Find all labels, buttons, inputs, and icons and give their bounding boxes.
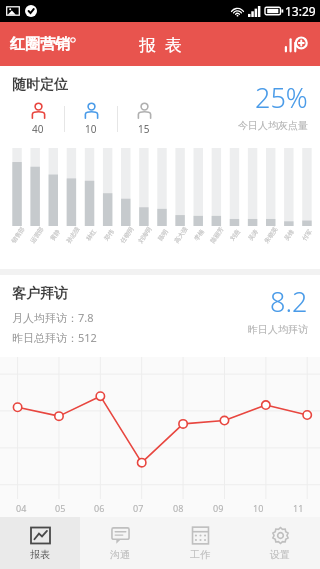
button[interactable]: 客户拜访: [0, 275, 320, 517]
staticText: 销售部: [10, 225, 26, 245]
staticText: 13:29: [285, 3, 316, 19]
staticText: 今日人均灰点量: [238, 119, 308, 132]
staticText: 25%: [255, 79, 308, 116]
staticText: 报表: [30, 548, 50, 561]
staticText: 运营部: [29, 225, 45, 245]
button[interactable]: 沟通: [80, 517, 160, 569]
button[interactable]: 报表: [0, 517, 80, 569]
staticText: 月人均拜访：7.8: [12, 310, 94, 325]
staticText: 昨日总拜访：512: [12, 330, 97, 345]
staticText: 报 表: [139, 33, 182, 56]
button[interactable]: 红圈营销: [10, 35, 76, 54]
staticText: 刘海明: [137, 225, 153, 245]
staticText: 随时定位: [12, 76, 68, 94]
staticText: 11: [293, 502, 304, 514]
staticText: 林红: [84, 228, 98, 242]
staticText: 黄静: [48, 228, 62, 242]
button[interactable]: Report settings: [282, 31, 308, 57]
staticText: 10: [85, 122, 97, 136]
staticText: 郑伟: [102, 228, 116, 242]
staticText: 10: [253, 502, 264, 514]
staticText: 刘燕: [228, 228, 242, 242]
staticText: 付军: [300, 228, 314, 242]
staticText: 05: [55, 502, 66, 514]
staticText: 朱晓英: [263, 225, 279, 245]
staticText: 客户拜访: [12, 285, 68, 303]
button[interactable]: 随时定位: [0, 66, 320, 269]
staticText: 昨日人均拜访: [248, 323, 308, 336]
staticText: 吴涛: [246, 228, 260, 242]
staticText: 40: [32, 122, 44, 136]
staticText: 设置: [270, 548, 290, 561]
staticText: 04: [16, 502, 27, 514]
staticText: 孙志强: [65, 225, 81, 245]
staticText: 07: [133, 502, 144, 514]
staticText: 工作: [190, 548, 210, 561]
button[interactable]: 设置: [240, 517, 320, 569]
staticText: 06: [94, 502, 105, 514]
staticText: 陈丽芳: [209, 225, 225, 245]
button[interactable]: 工作: [160, 517, 240, 569]
staticText: 15: [138, 122, 150, 136]
staticText: 09: [213, 502, 224, 514]
staticText: 08: [173, 502, 184, 514]
staticText: 高大强: [173, 225, 189, 245]
staticText: 吴锋: [282, 228, 296, 242]
staticText: 任晓明: [119, 225, 135, 245]
staticText: 陈明: [156, 228, 170, 242]
staticText: 沟通: [110, 548, 130, 561]
staticText: 8.2: [270, 283, 308, 320]
staticText: 红圈营销: [10, 35, 70, 54]
staticText: 李楠: [192, 228, 206, 242]
